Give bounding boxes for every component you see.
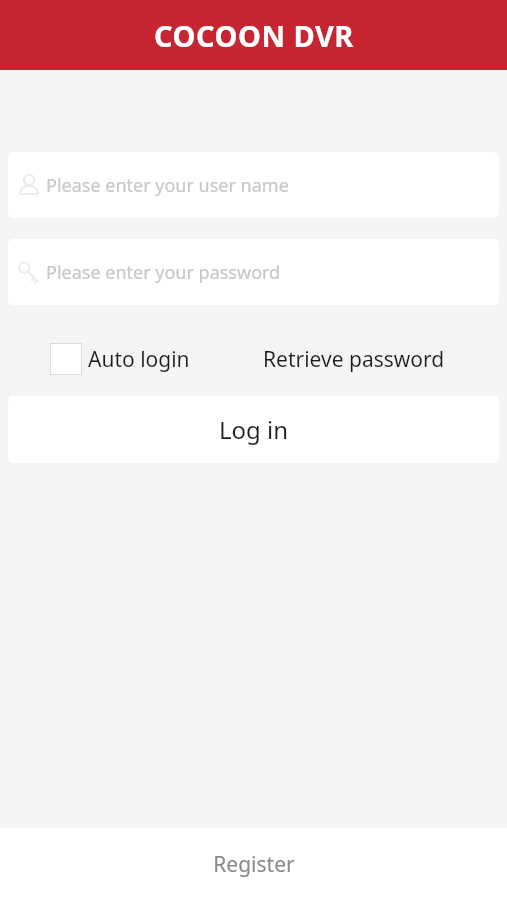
staticText: Auto login [88,345,190,374]
button[interactable]: Auto login [50,343,190,375]
staticText: Register [213,850,295,879]
button[interactable]: Register [0,828,507,900]
staticText: COCOON DVR [154,16,354,55]
button[interactable]: Log in [8,396,499,463]
button[interactable]: User name [8,152,499,218]
staticText: Please enter your password [46,260,281,285]
staticText: Retrieve password [263,345,445,374]
button[interactable]: Retrieve password [263,345,445,374]
staticText: Please enter your user name [46,173,289,198]
staticText: Log in [219,413,289,446]
other: User name [16,172,42,198]
other: Password [16,259,42,285]
button[interactable]: Password [8,239,499,305]
